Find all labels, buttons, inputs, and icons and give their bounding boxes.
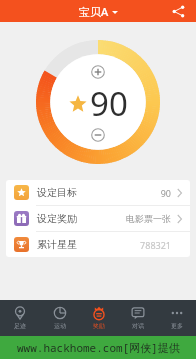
staticText: 累计星星 — [37, 238, 77, 251]
button[interactable]: Remove star — [90, 127, 106, 143]
staticText: 宝贝A — [79, 4, 109, 19]
staticText: 设定奖励 — [37, 212, 77, 225]
staticText: 奖励 — [93, 322, 105, 330]
button[interactable]: Add star — [90, 64, 106, 80]
button[interactable]: 设定奖励 — [6, 206, 190, 231]
button[interactable]: 足迹 — [0, 300, 40, 336]
staticText: 设定目标 — [37, 186, 77, 199]
button[interactable]: 累计星星 — [6, 232, 190, 257]
button[interactable]: 对话 — [118, 300, 157, 336]
staticText: 90 — [90, 81, 128, 126]
staticText: 788321 — [140, 239, 171, 251]
staticText: 足迹 — [14, 322, 26, 330]
staticText: 对话 — [132, 322, 144, 330]
staticText: 更多 — [171, 322, 183, 330]
button[interactable]: Share — [168, 1, 188, 21]
staticText: www.hackhome.com[网侠]提供 — [17, 340, 180, 355]
staticText: 90 — [160, 187, 171, 199]
button[interactable]: 宝贝A — [75, 4, 122, 19]
staticText: 运动 — [54, 322, 66, 330]
staticText: 电影票一张 — [126, 213, 171, 224]
button[interactable]: 运动 — [40, 300, 79, 336]
button[interactable]: 奖励 — [79, 300, 118, 336]
button[interactable]: 设定目标 — [6, 180, 190, 205]
button[interactable]: 更多 — [157, 300, 196, 336]
